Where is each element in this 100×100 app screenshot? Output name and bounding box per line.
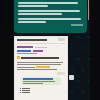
button[interactable]: Scroll to bottom — [69, 75, 74, 80]
button[interactable] — [14, 36, 68, 100]
button[interactable] — [21, 77, 61, 85]
button[interactable] — [14, 0, 87, 33]
